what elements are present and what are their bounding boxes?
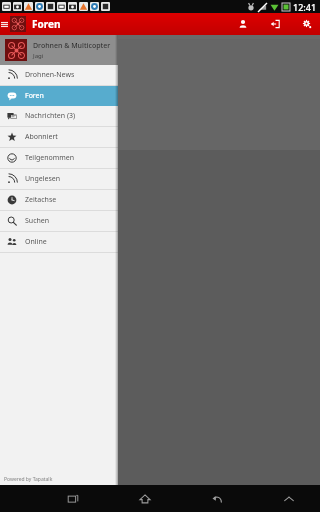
staticText: Ungelesen xyxy=(25,174,61,184)
button[interactable]: Drohnen & Multicopter xyxy=(0,35,118,65)
button[interactable]: Drohnen-News xyxy=(0,65,118,85)
staticText: Drohnen & Multicopter xyxy=(33,41,111,51)
button[interactable]: Expand xyxy=(276,486,302,512)
button[interactable]: Home xyxy=(132,486,158,512)
staticText: Online xyxy=(25,237,47,247)
button[interactable]: Teilgenommen xyxy=(0,148,118,168)
button[interactable]: Account xyxy=(234,15,252,33)
button[interactable]: Open navigation drawer xyxy=(0,13,8,35)
staticText: 12:41 xyxy=(293,1,317,13)
staticText: Teilgenommen xyxy=(25,153,75,163)
button[interactable]: Online xyxy=(0,232,118,252)
staticText: Zeitachse xyxy=(25,195,57,205)
staticText: Jagi xyxy=(33,52,44,60)
staticText: Drohnen-News xyxy=(25,70,75,80)
button[interactable]: Recent apps xyxy=(60,486,86,512)
staticText: Nachrichten (3) xyxy=(25,111,76,121)
button[interactable]: Foren xyxy=(0,86,118,106)
staticText: Suchen xyxy=(25,216,50,226)
staticText: Abonniert xyxy=(25,132,58,142)
button[interactable]: Back xyxy=(204,486,230,512)
button[interactable]: Suchen xyxy=(0,211,118,231)
staticText: Foren xyxy=(32,17,61,31)
button[interactable]: Log out xyxy=(266,15,284,33)
staticText: Powered by Tapatalk xyxy=(4,476,53,483)
button[interactable]: Zeitachse xyxy=(0,190,118,210)
staticText: Foren xyxy=(25,91,44,101)
button[interactable]: Nachrichten (3) xyxy=(0,106,118,126)
button[interactable]: Settings xyxy=(298,15,316,33)
button[interactable]: Ungelesen xyxy=(0,169,118,189)
button[interactable]: Abonniert xyxy=(0,127,118,147)
